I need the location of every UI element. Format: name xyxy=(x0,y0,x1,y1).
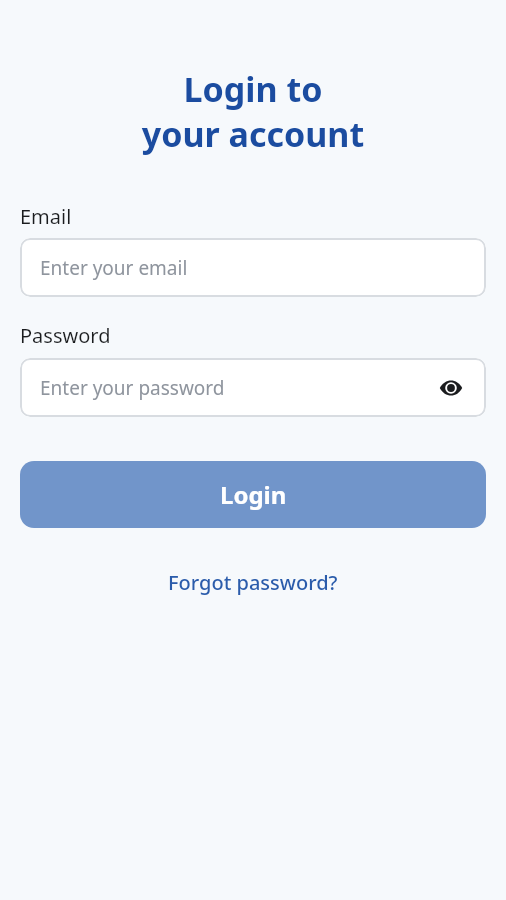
staticText: Enter your password xyxy=(40,375,438,401)
button[interactable]: Enter your email xyxy=(20,238,486,297)
button[interactable]: Forgot password? xyxy=(168,569,338,596)
button[interactable]: Login xyxy=(20,461,486,528)
staticText: Enter your email xyxy=(40,255,464,281)
staticText: Login xyxy=(220,478,287,511)
staticText: Login to your account xyxy=(20,66,486,156)
staticText: Forgot password? xyxy=(168,569,338,596)
button[interactable] xyxy=(438,378,464,398)
button[interactable]: Enter your password xyxy=(20,358,486,417)
staticText: Email xyxy=(20,203,72,230)
staticText: Password xyxy=(20,322,111,349)
